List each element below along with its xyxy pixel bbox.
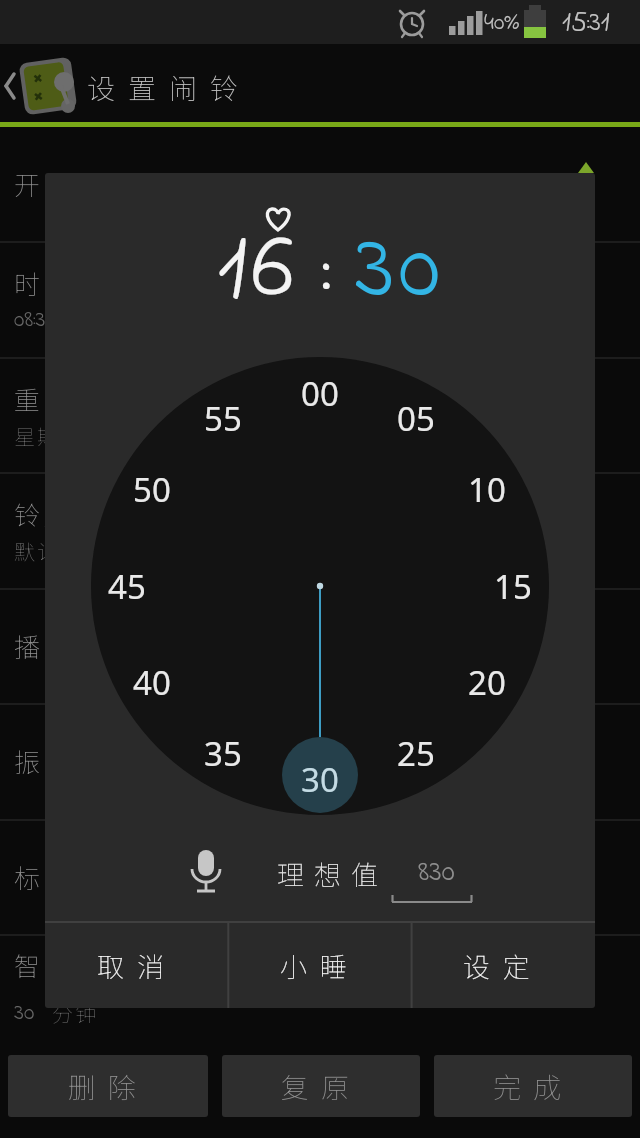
- staticText: 振动: [14, 742, 75, 780]
- staticText: :: [298, 202, 355, 302]
- staticText: 15: [494, 564, 532, 609]
- staticText: 50: [133, 467, 171, 512]
- staticText: 30: [301, 757, 339, 802]
- staticText: 开启闹铃: [14, 165, 135, 203]
- staticText: 00: [301, 371, 339, 416]
- button[interactable]: [434, 1055, 632, 1117]
- staticText: 25: [397, 731, 435, 776]
- button[interactable]: 830: [386, 843, 486, 903]
- staticText: 55: [204, 396, 242, 441]
- button[interactable]: [222, 1055, 420, 1117]
- button[interactable]: 40: [107, 652, 197, 712]
- button[interactable]: 10: [442, 459, 532, 519]
- staticText: 20: [468, 660, 506, 705]
- button[interactable]: 50: [107, 459, 197, 519]
- button[interactable]: 35: [178, 723, 268, 783]
- button[interactable]: 00: [275, 363, 365, 423]
- staticText: 08:30: [14, 303, 56, 338]
- button[interactable]: 设定: [413, 923, 593, 1007]
- staticText: 小睡: [280, 946, 360, 985]
- button[interactable]: 小睡: [230, 923, 410, 1007]
- staticText: 45: [108, 564, 146, 609]
- button[interactable]: 15: [468, 556, 558, 616]
- staticText: 取消: [97, 946, 177, 985]
- button[interactable]: 25: [371, 723, 461, 783]
- button[interactable]: 20: [442, 652, 532, 712]
- staticText: 标签: [14, 858, 75, 896]
- staticText: 设置闹铃: [87, 67, 252, 108]
- button[interactable]: 45: [82, 556, 172, 616]
- staticText: 星期一 星期二 星期三: [14, 421, 235, 451]
- staticText: 铃声: [14, 495, 75, 533]
- button[interactable]: [0, 44, 640, 122]
- staticText: 830: [418, 851, 455, 895]
- staticText: 删除: [68, 1066, 149, 1107]
- staticText: 35: [204, 731, 242, 776]
- staticText: 10: [468, 467, 506, 512]
- button[interactable]: 05: [371, 388, 461, 448]
- staticText: 播放模式: [14, 627, 135, 665]
- button[interactable]: [8, 1055, 208, 1117]
- staticText: 设定: [463, 946, 543, 985]
- staticText: 40: [133, 660, 171, 705]
- staticText: 30: [355, 202, 445, 302]
- staticText: 16: [217, 202, 298, 302]
- staticText: 15:31: [562, 3, 610, 44]
- staticText: 05: [397, 396, 435, 441]
- staticText: 默认铃声: [14, 536, 106, 566]
- staticText: 分钟: [52, 998, 98, 1028]
- staticText: 30: [14, 996, 35, 1031]
- button[interactable]: 取消: [47, 923, 227, 1007]
- staticText: 时间: [14, 264, 75, 302]
- staticText: 智能小睡: [14, 946, 135, 984]
- staticText: 40%: [484, 6, 520, 41]
- staticText: 完成: [493, 1066, 574, 1107]
- staticText: 复原: [281, 1066, 362, 1107]
- staticText: 理想值: [277, 854, 388, 893]
- staticText: 重复: [14, 380, 75, 418]
- button[interactable]: 30: [275, 749, 365, 809]
- button[interactable]: 55: [178, 388, 268, 448]
